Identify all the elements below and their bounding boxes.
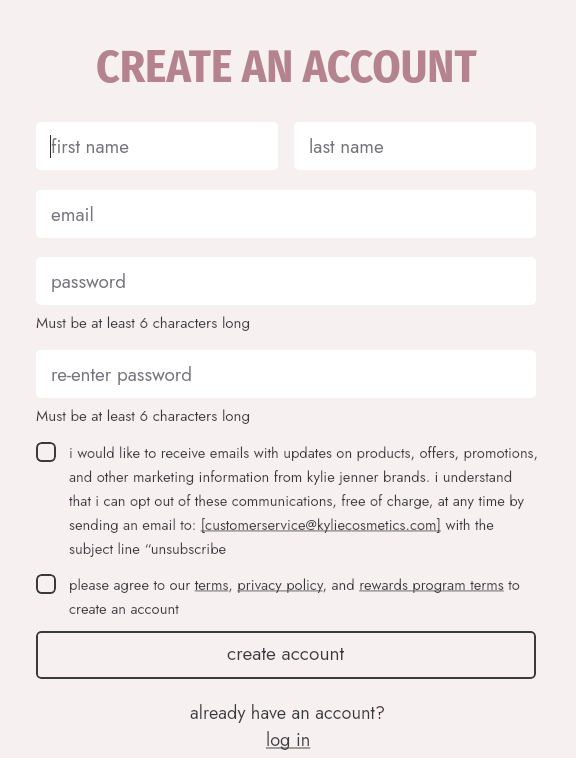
staticText: create an account [69,598,179,619]
button[interactable]: log in [266,727,311,753]
staticText: and other marketing information from kyl… [69,466,513,487]
staticText: CREATE AN ACCOUNT [96,40,477,94]
staticText: Must be at least 6 characters long [36,405,251,427]
staticText: sending an email to: [customerservice@ky… [69,514,494,535]
button[interactable]: last name [294,122,536,170]
staticText: please agree to our terms, privacy polic… [69,574,520,595]
button[interactable]: re-enter password [36,350,536,398]
staticText: already have an account? [190,700,386,726]
button[interactable]: please agree to our terms, privacy polic… [69,574,549,624]
staticText: Must be at least 6 characters long [36,312,251,334]
staticText: re-enter password [51,361,193,388]
staticText: subject line “unsubscribe [69,538,227,559]
staticText: email [51,201,94,228]
staticText: first name [51,133,130,160]
button[interactable]: email [36,190,536,238]
button[interactable]: i would like to receive emails with upda… [69,442,549,564]
button[interactable]: Agree to terms checkbox [36,574,56,594]
staticText: last name [309,133,384,160]
staticText: create account [227,640,345,668]
staticText: that i can opt out of these communicatio… [69,490,524,511]
button[interactable]: create account [36,631,536,679]
button[interactable]: password [36,257,536,305]
staticText: password [51,268,127,295]
button[interactable]: Marketing emails consent checkbox [36,442,56,462]
button[interactable]: first name [36,122,278,170]
staticText: i would like to receive emails with upda… [69,442,539,463]
